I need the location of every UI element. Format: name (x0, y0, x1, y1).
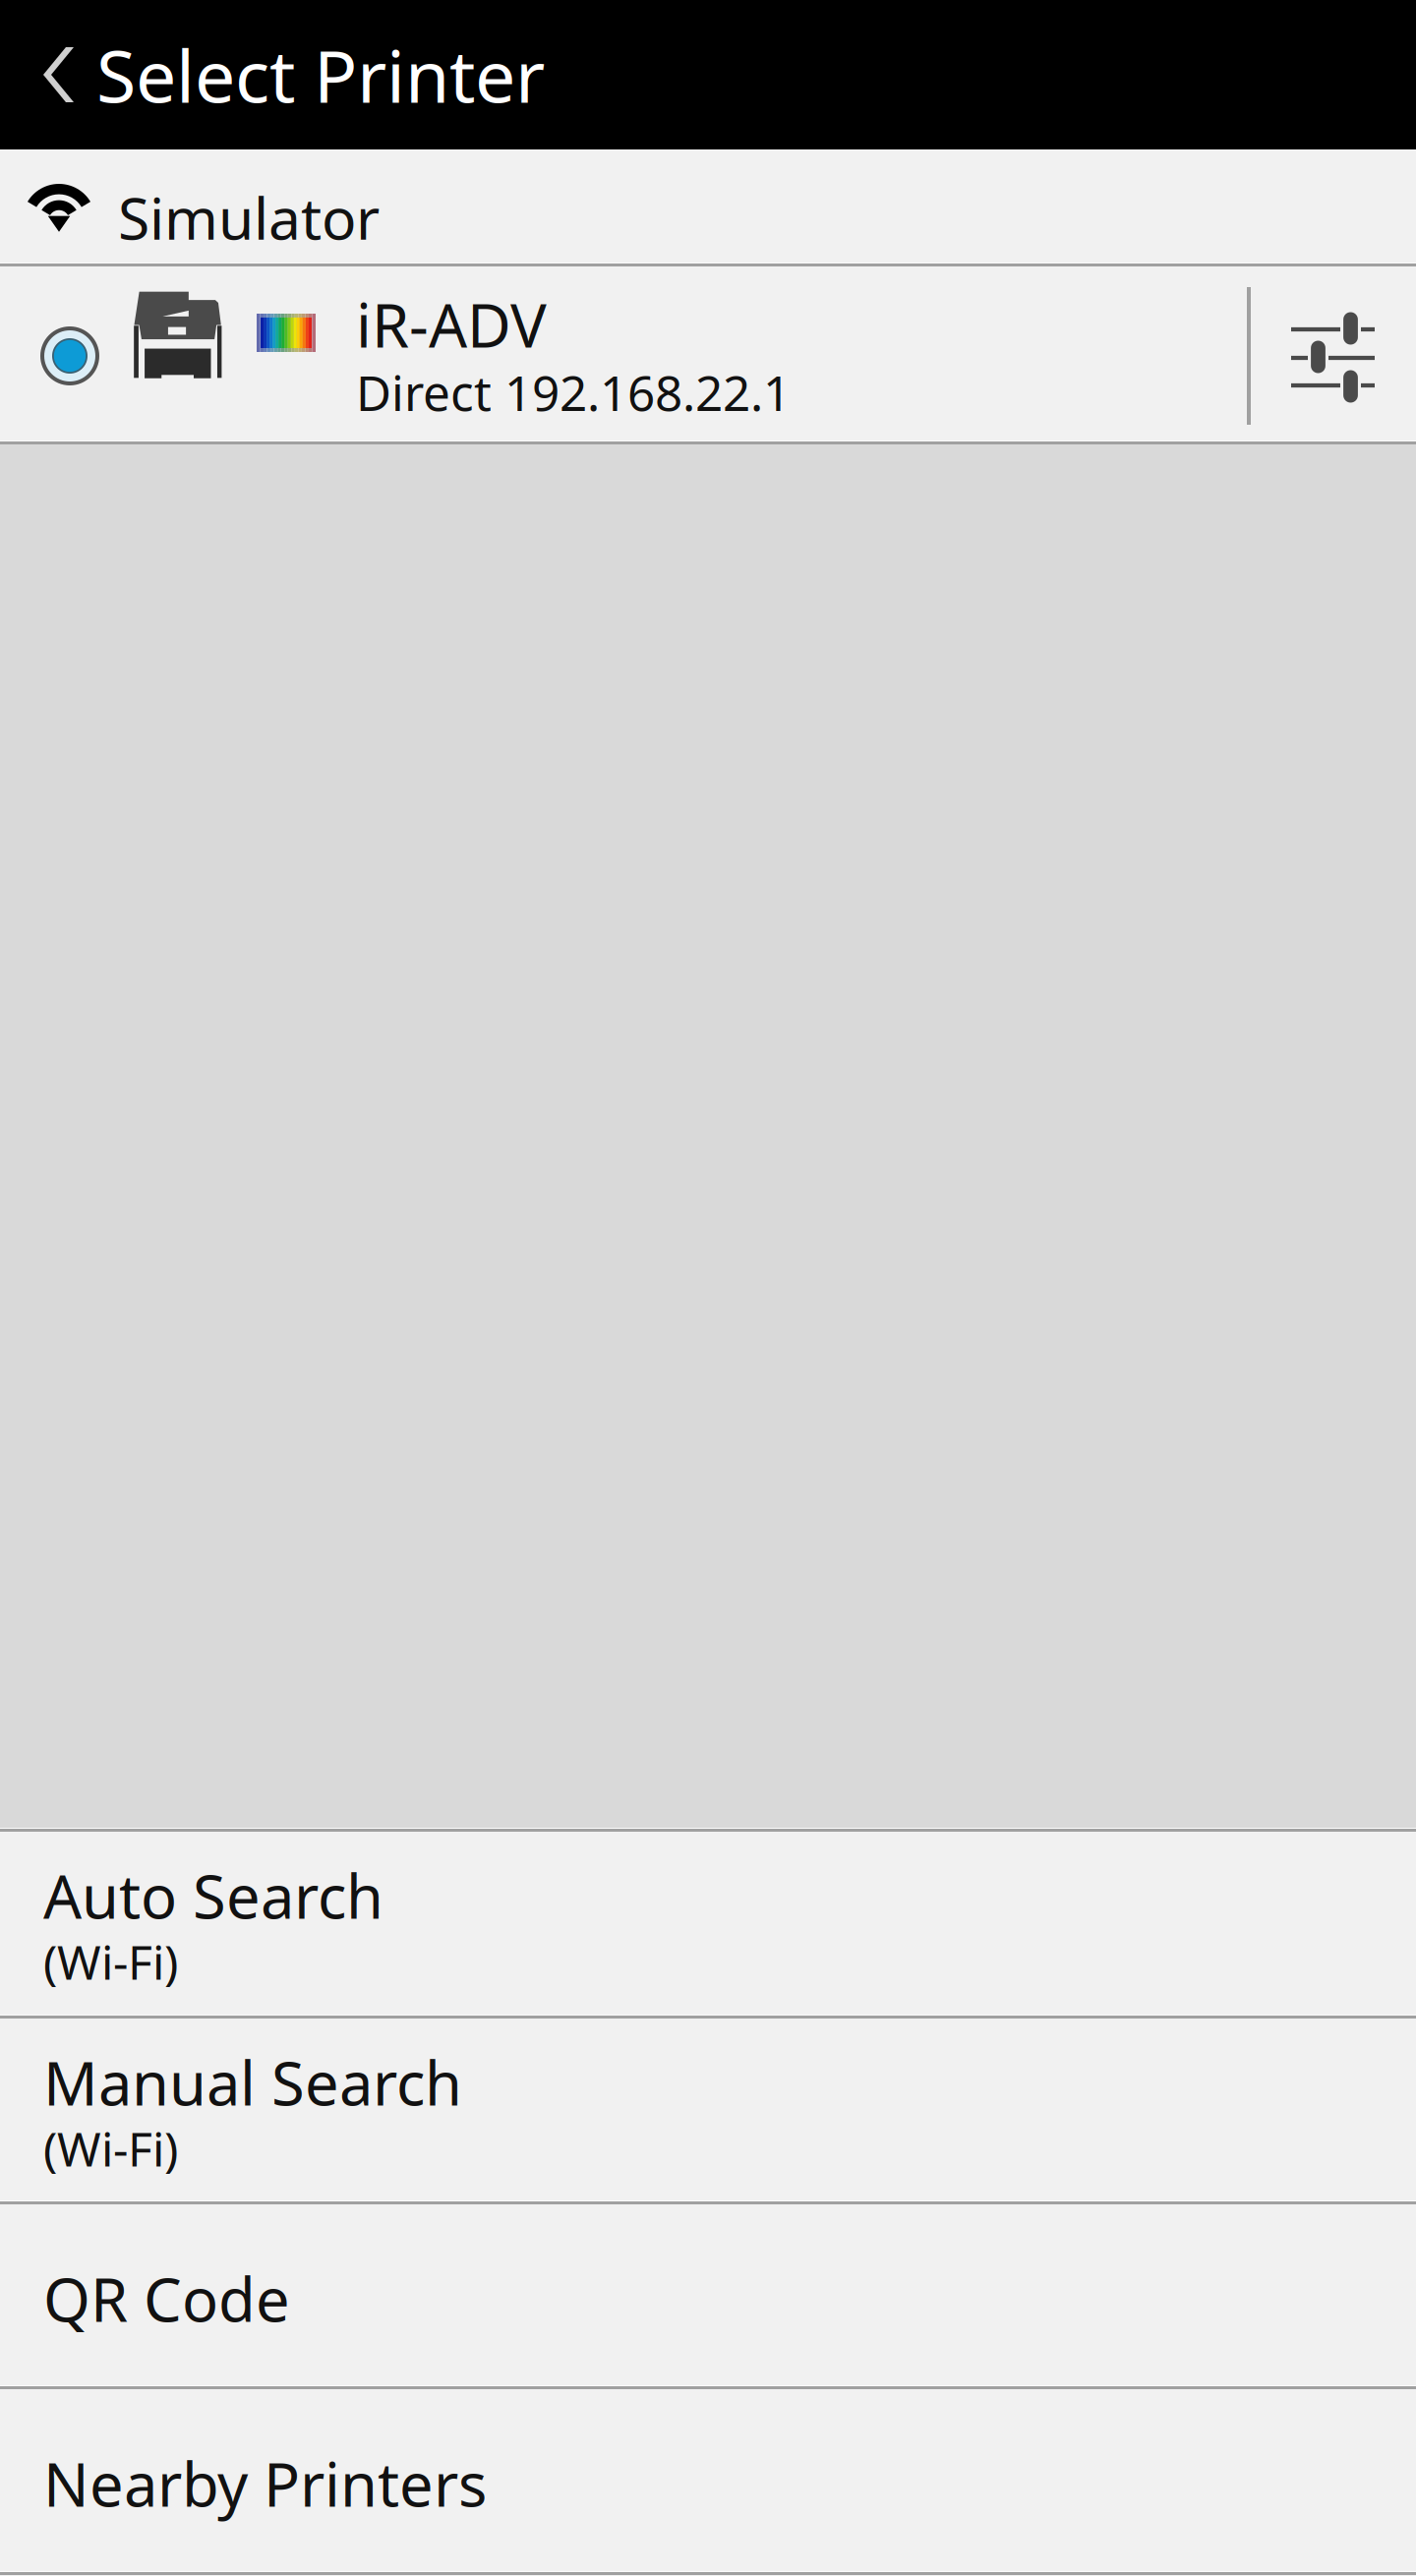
staticText: (Wi-Fi) (43, 2117, 178, 2179)
button[interactable]: iR-ADV (0, 266, 1247, 440)
staticText: (Wi-Fi) (43, 1930, 178, 1993)
button[interactable]: Select Printer (0, 0, 572, 149)
button[interactable]: QR Code (0, 2204, 1416, 2385)
staticText: iR-ADV (356, 284, 547, 364)
staticText: Manual Search (43, 2042, 462, 2122)
staticText: Direct 192.168.22.1 (356, 360, 791, 424)
button[interactable]: Auto Search (0, 1832, 1416, 2015)
button[interactable]: Manual Search (0, 2019, 1416, 2200)
button[interactable]: Printer Settings (1251, 266, 1416, 440)
button[interactable]: Nearby Printers (0, 2389, 1416, 2571)
staticText: Auto Search (43, 1855, 383, 1935)
staticText: QR Code (43, 2258, 290, 2338)
staticText: Nearby Printers (43, 2443, 487, 2523)
staticText: Select Printer (96, 27, 545, 123)
staticText: Simulator (118, 179, 380, 256)
